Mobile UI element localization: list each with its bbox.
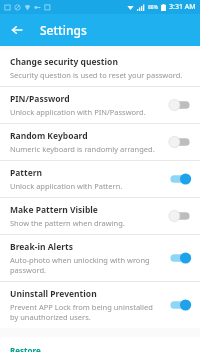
staticText: Random Keyboard <box>10 130 88 142</box>
button[interactable]: On <box>168 172 192 186</box>
button[interactable]: Change security question <box>0 50 200 86</box>
staticText: Uninstall Prevention <box>10 288 97 300</box>
button[interactable]: Off <box>168 98 192 112</box>
staticText: Restore <box>10 345 41 352</box>
staticText: Numeric keyboard is randomly arranged. <box>10 144 155 154</box>
staticText: 88% <box>148 4 158 11</box>
staticText: Prevent APP Lock from being uninstalled … <box>10 302 162 322</box>
staticText: Make Pattern Visible <box>10 204 98 216</box>
staticText: PIN/Password <box>10 93 70 105</box>
button[interactable]: On <box>168 298 192 312</box>
staticText: Unlock application with Pattern. <box>10 181 123 191</box>
staticText: Pattern <box>10 167 43 179</box>
staticText: Auto-photo when unlocking with wrong pas… <box>10 255 162 275</box>
button[interactable]: Off <box>168 135 192 149</box>
staticText: Security question is used to reset your … <box>10 70 183 80</box>
button[interactable]: PIN/Password <box>0 87 200 123</box>
button[interactable]: Random Keyboard <box>0 124 200 160</box>
staticText: Show the pattern when drawing. <box>10 218 125 228</box>
staticText: Settings <box>40 22 87 38</box>
button[interactable]: Pattern <box>0 161 200 197</box>
button[interactable]: Break-in Alerts <box>0 235 200 281</box>
button[interactable]: Off <box>168 209 192 223</box>
staticText: Unlock application with PIN/Password. <box>10 107 146 117</box>
staticText: 3:31 AM <box>169 2 196 12</box>
button[interactable]: Uninstall Prevention <box>0 282 200 328</box>
button[interactable]: Back <box>6 19 28 41</box>
button[interactable]: On <box>168 251 192 265</box>
button[interactable]: Make Pattern Visible <box>0 198 200 234</box>
staticText: Break-in Alerts <box>10 241 73 253</box>
staticText: Change security question <box>10 56 118 68</box>
